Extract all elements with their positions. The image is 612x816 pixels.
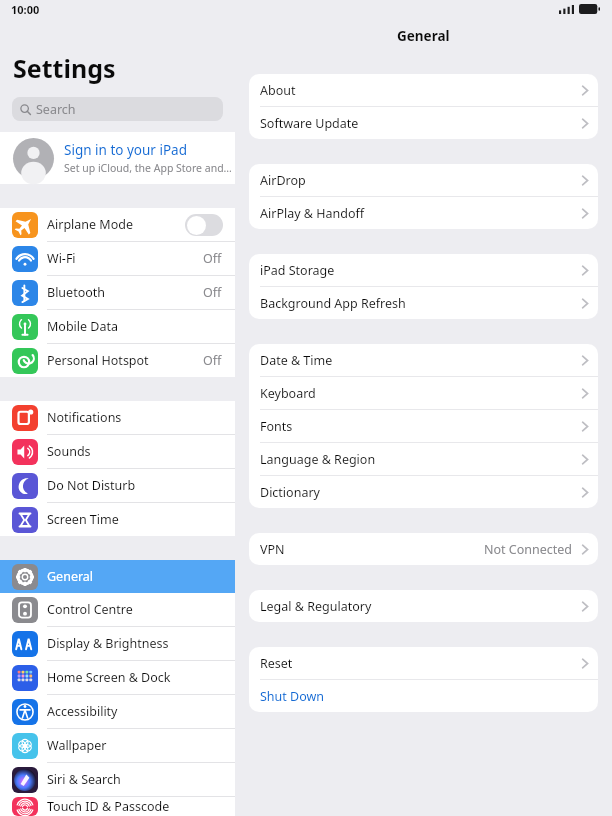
button[interactable]: Wallpaper [0,729,235,762]
staticText: Personal Hotspot [47,352,203,369]
staticText: Do Not Disturb [47,477,222,494]
button[interactable]: Reset [249,647,598,679]
button[interactable]: Toggle Airplane Mode [185,214,223,236]
button[interactable]: AirPlay & Handoff [249,197,598,229]
staticText: Off [203,284,222,301]
button[interactable]: General [0,560,235,593]
staticText: Settings [13,51,116,85]
button[interactable]: Screen Time [0,503,235,536]
staticText: VPN [260,541,484,558]
staticText: Dictionary [260,484,581,501]
button[interactable]: Sign in to your iPad [0,132,235,184]
staticText: Screen Time [47,511,222,528]
staticText: Touch ID & Passcode [47,798,222,815]
button[interactable]: Wi-Fi [0,242,235,275]
button[interactable]: Dictionary [249,476,598,508]
button[interactable]: Airplane Mode [0,208,235,241]
staticText: Fonts [260,418,581,435]
button[interactable]: Fonts [249,410,598,442]
button[interactable]: Home Screen & Dock [0,661,235,694]
staticText: Sounds [47,443,222,460]
button[interactable]: Do Not Disturb [0,469,235,502]
button[interactable]: iPad Storage [249,254,598,286]
staticText: Home Screen & Dock [47,669,222,686]
button[interactable]: AirDrop [249,164,598,196]
button[interactable]: Personal Hotspot [0,344,235,377]
button[interactable]: About [249,74,598,106]
staticText: Keyboard [260,385,581,402]
staticText: About [260,82,581,99]
staticText: Display & Brightness [47,635,222,652]
button[interactable]: Keyboard [249,377,598,409]
button[interactable]: Accessibility [0,695,235,728]
staticText: Mobile Data [47,318,222,335]
staticText: Off [203,250,222,267]
staticText: Language & Region [260,451,581,468]
staticText: Accessibility [47,703,222,720]
staticText: Wi-Fi [47,250,203,267]
staticText: iPad Storage [260,262,581,279]
button[interactable]: Sounds [0,435,235,468]
staticText: General [47,568,222,585]
button[interactable]: Mobile Data [0,310,235,343]
staticText: Reset [260,655,581,672]
button[interactable]: Control Centre [0,593,235,626]
staticText: Bluetooth [47,284,203,301]
button[interactable]: Legal & Regulatory [249,590,598,622]
staticText: AirPlay & Handoff [260,205,581,222]
staticText: Control Centre [47,601,222,618]
staticText: Wallpaper [47,737,222,754]
staticText: Airplane Mode [47,216,185,233]
staticText: AirDrop [260,172,581,189]
button[interactable]: Search [12,97,223,121]
button[interactable]: Background App Refresh [249,287,598,319]
staticText: Background App Refresh [260,295,581,312]
button[interactable]: Touch ID & Passcode [0,797,235,816]
button[interactable]: Bluetooth [0,276,235,309]
button[interactable]: VPN [249,533,598,565]
staticText: Shut Down [260,688,581,705]
staticText: Date & Time [260,352,581,369]
staticText: Siri & Search [47,771,222,788]
staticText: General [397,27,450,45]
staticText: Legal & Regulatory [260,598,581,615]
staticText: Not Connected [484,541,573,558]
button[interactable]: Notifications [0,401,235,434]
button[interactable]: Shut Down [249,680,598,712]
staticText: Set up iCloud, the App Store and… [64,161,232,175]
staticText: Software Update [260,115,581,132]
button[interactable]: Language & Region [249,443,598,475]
staticText: Sign in to your iPad [64,141,187,159]
button[interactable]: Display & Brightness [0,627,235,660]
button[interactable]: Software Update [249,107,598,139]
staticText: Off [203,352,222,369]
staticText: Notifications [47,409,222,426]
button[interactable]: Siri & Search [0,763,235,796]
staticText: Search [36,101,76,118]
button[interactable]: Date & Time [249,344,598,376]
staticText: 10:00 [11,2,40,17]
